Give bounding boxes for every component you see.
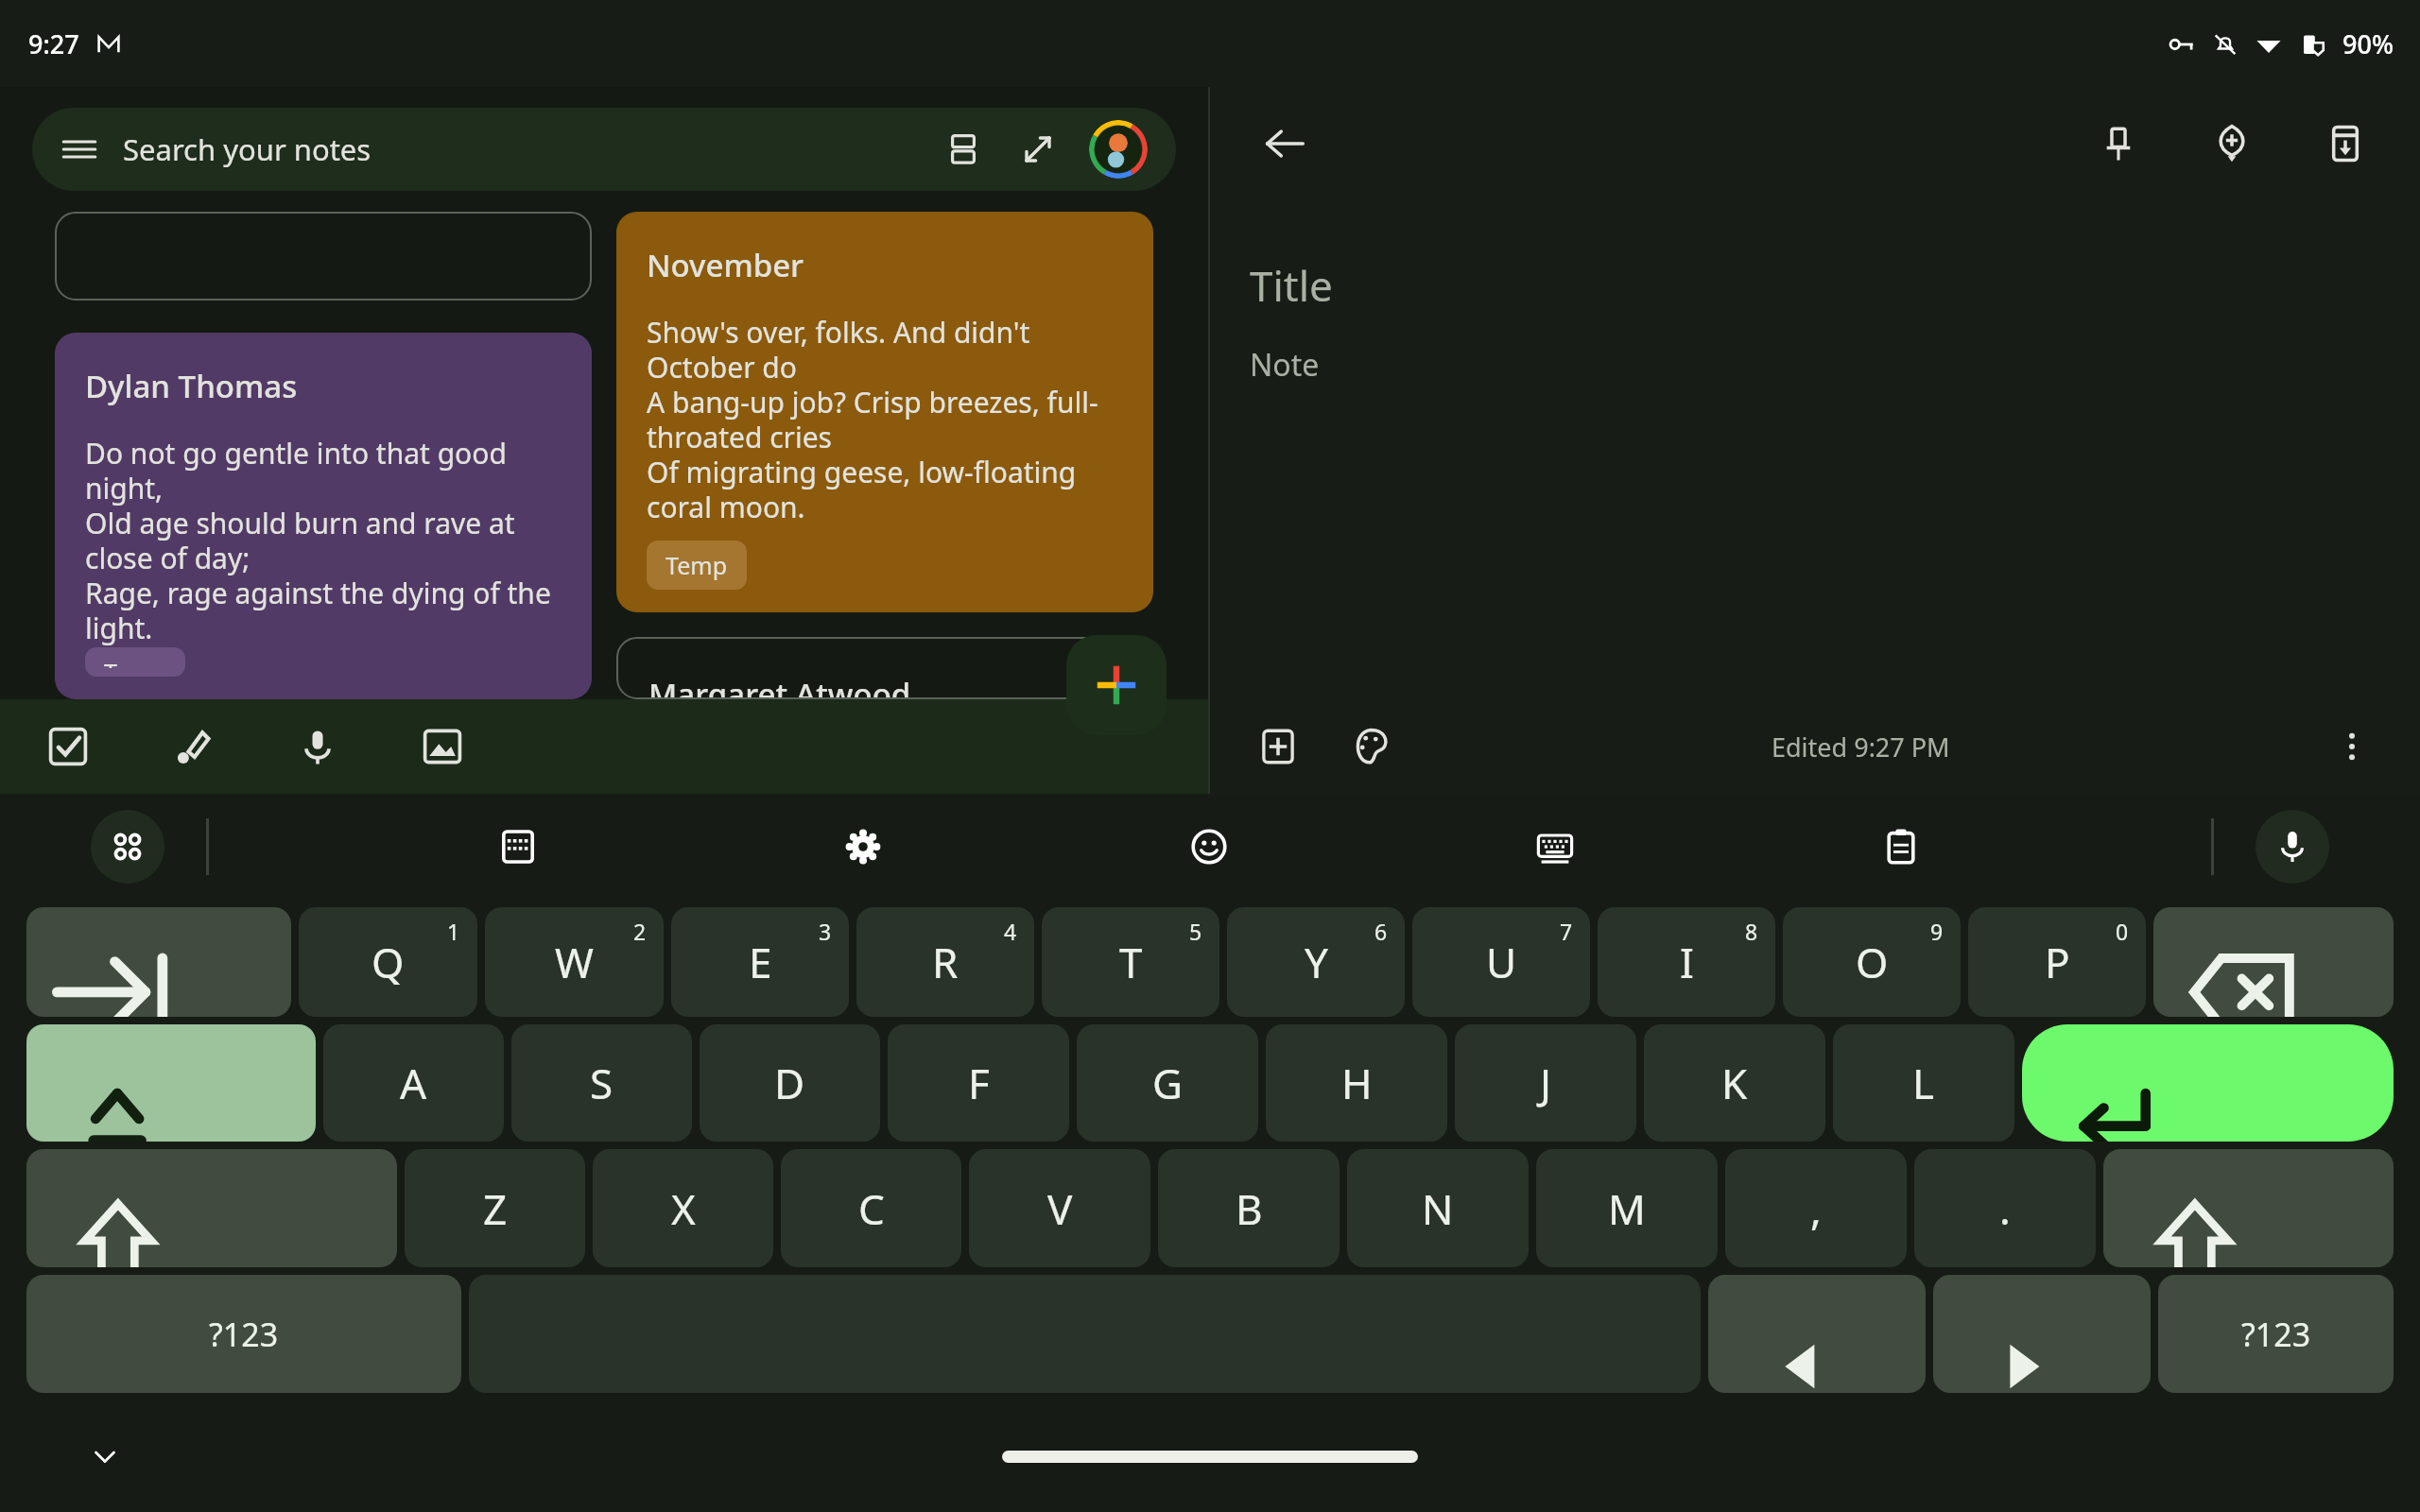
staticText: 90%	[2342, 26, 2394, 61]
button[interactable]: Pin	[2082, 107, 2155, 180]
other: Menu	[60, 130, 98, 168]
button[interactable]: P	[1968, 907, 2146, 1017]
button[interactable]: Q	[299, 907, 477, 1017]
button[interactable]: Tab	[26, 907, 291, 1017]
button[interactable]: R	[856, 907, 1034, 1017]
button[interactable]: W	[485, 907, 664, 1017]
button[interactable]: Enter	[2022, 1024, 2394, 1142]
button[interactable]: M	[1536, 1149, 1718, 1267]
button[interactable]: .	[1914, 1149, 2096, 1267]
button[interactable]: Shift	[26, 1149, 397, 1267]
staticText: 6	[1374, 917, 1388, 946]
button[interactable]: D	[700, 1024, 880, 1142]
staticText: C	[858, 1180, 885, 1237]
button[interactable]: Clipboard suggestions	[482, 811, 554, 883]
button[interactable]: ?123	[26, 1275, 461, 1393]
staticText: 3	[819, 917, 832, 946]
staticText: L	[1912, 1055, 1935, 1111]
button[interactable]: Y	[1227, 907, 1405, 1017]
staticText: W	[555, 934, 594, 990]
button[interactable]: Margaret Atwood	[616, 637, 1153, 699]
button[interactable]: Caps lock	[26, 1024, 316, 1142]
button[interactable]: New image note	[408, 713, 476, 781]
button[interactable]: Voice input	[2256, 810, 2329, 884]
button[interactable]: ,	[1725, 1149, 1907, 1267]
staticText: I	[1680, 934, 1694, 990]
button[interactable]: More options	[2318, 713, 2386, 781]
staticText: 9:27	[28, 26, 79, 61]
button[interactable]: Expand	[1019, 130, 1057, 168]
button[interactable]: Background colour	[1337, 713, 1405, 781]
button[interactable]: November	[616, 212, 1153, 612]
button[interactable]: L	[1833, 1024, 2014, 1142]
button[interactable]: Back	[1248, 107, 1322, 180]
button[interactable]: Toolbox	[91, 810, 164, 884]
staticText: .	[1999, 1180, 2011, 1237]
staticText: Title	[1250, 257, 1333, 314]
button[interactable]: N	[1347, 1149, 1529, 1267]
staticText: K	[1721, 1055, 1748, 1111]
button[interactable]: Clipboard	[1865, 811, 1937, 883]
button[interactable]: Account	[1089, 120, 1148, 179]
button[interactable]: New list	[34, 713, 102, 781]
button[interactable]: F	[888, 1024, 1069, 1142]
button[interactable]: Add	[1244, 713, 1312, 781]
button[interactable]: Temp	[647, 541, 747, 590]
button[interactable]: T	[1042, 907, 1219, 1017]
button[interactable]: U	[1412, 907, 1590, 1017]
button[interactable]: Hide keyboard	[74, 1425, 136, 1487]
button[interactable]: B	[1158, 1149, 1340, 1267]
button[interactable]: Dylan Thomas	[55, 333, 592, 699]
button[interactable]: Backspace	[2153, 907, 2394, 1017]
staticText: 2	[633, 917, 647, 946]
staticText: Z	[483, 1180, 508, 1237]
staticText: S	[590, 1055, 614, 1111]
button[interactable]: X	[593, 1149, 773, 1267]
button[interactable]: Temp	[85, 647, 185, 677]
button[interactable]: A	[323, 1024, 504, 1142]
button[interactable]: E	[671, 907, 849, 1017]
button[interactable]: ?123	[2158, 1275, 2394, 1393]
button[interactable]: O	[1783, 907, 1961, 1017]
button[interactable]	[55, 212, 592, 301]
button[interactable]: Z	[405, 1149, 585, 1267]
staticText: B	[1236, 1180, 1263, 1237]
staticText: G	[1152, 1055, 1184, 1111]
staticText: R	[932, 934, 959, 990]
button[interactable]: Archive	[2308, 107, 2382, 180]
staticText: Temp	[665, 549, 728, 581]
button[interactable]: I	[1598, 907, 1775, 1017]
button[interactable]: Settings	[827, 811, 899, 883]
staticText: ?123	[2241, 1313, 2311, 1356]
staticText: Temp	[104, 656, 166, 668]
button[interactable]: Emoji	[1173, 811, 1245, 883]
staticText: Edited 9:27 PM	[1772, 730, 1950, 765]
staticText: 4	[1004, 917, 1017, 946]
button[interactable]: New drawing	[159, 713, 227, 781]
button[interactable]: Menu	[32, 108, 1176, 191]
staticText: Search your notes	[123, 129, 372, 169]
button[interactable]: K	[1644, 1024, 1825, 1142]
button[interactable]: C	[781, 1149, 961, 1267]
button[interactable]: H	[1266, 1024, 1447, 1142]
button[interactable]: List view	[945, 131, 981, 167]
button[interactable]: Switch keyboard	[1519, 811, 1591, 883]
button[interactable]: New voice note	[284, 713, 352, 781]
button[interactable]: Create note	[1066, 635, 1167, 735]
staticText: November	[647, 244, 804, 286]
button[interactable]: G	[1077, 1024, 1258, 1142]
button[interactable]: Move cursor right	[1933, 1275, 2151, 1393]
button[interactable]: Move cursor left	[1708, 1275, 1926, 1393]
button[interactable]: J	[1455, 1024, 1636, 1142]
button[interactable]: V	[969, 1149, 1150, 1267]
staticText: 5	[1189, 917, 1202, 946]
staticText: ,	[1810, 1180, 1822, 1237]
staticText: ?123	[209, 1313, 279, 1356]
button[interactable]: Reminder	[2195, 107, 2269, 180]
button[interactable]: S	[511, 1024, 692, 1142]
staticText: D	[774, 1055, 805, 1111]
staticText: Margaret Atwood	[648, 673, 911, 699]
button[interactable]: Shift	[2103, 1149, 2394, 1267]
staticText: 7	[1560, 917, 1573, 946]
